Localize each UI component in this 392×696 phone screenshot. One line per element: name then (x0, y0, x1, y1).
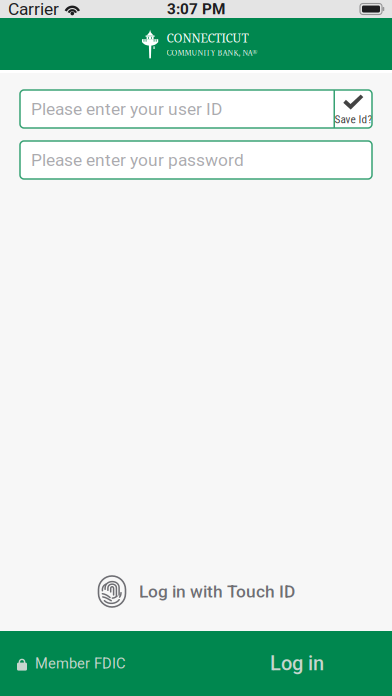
button[interactable]: Save Id? (335, 90, 372, 128)
button[interactable]: Log in (248, 638, 346, 689)
staticText: Please enter your user ID (31, 99, 222, 119)
button[interactable]: Log in with Touch ID (87, 569, 305, 614)
button[interactable]: Please enter your password (20, 141, 372, 179)
staticText: CONNECTICUT (166, 30, 248, 46)
staticText: Carrier (8, 0, 59, 19)
staticText: Member FDIC (35, 655, 126, 672)
staticText: Log in (270, 652, 324, 675)
staticText: Save Id? (334, 113, 372, 126)
staticText: 3:07 PM (167, 0, 225, 18)
staticText: COMMUNITY BANK, NA® (166, 48, 257, 58)
staticText: Please enter your password (31, 150, 244, 170)
button[interactable]: Please enter your user ID (20, 90, 333, 128)
staticText: Log in with Touch ID (139, 581, 295, 602)
button[interactable]: Member FDIC (0, 641, 140, 686)
